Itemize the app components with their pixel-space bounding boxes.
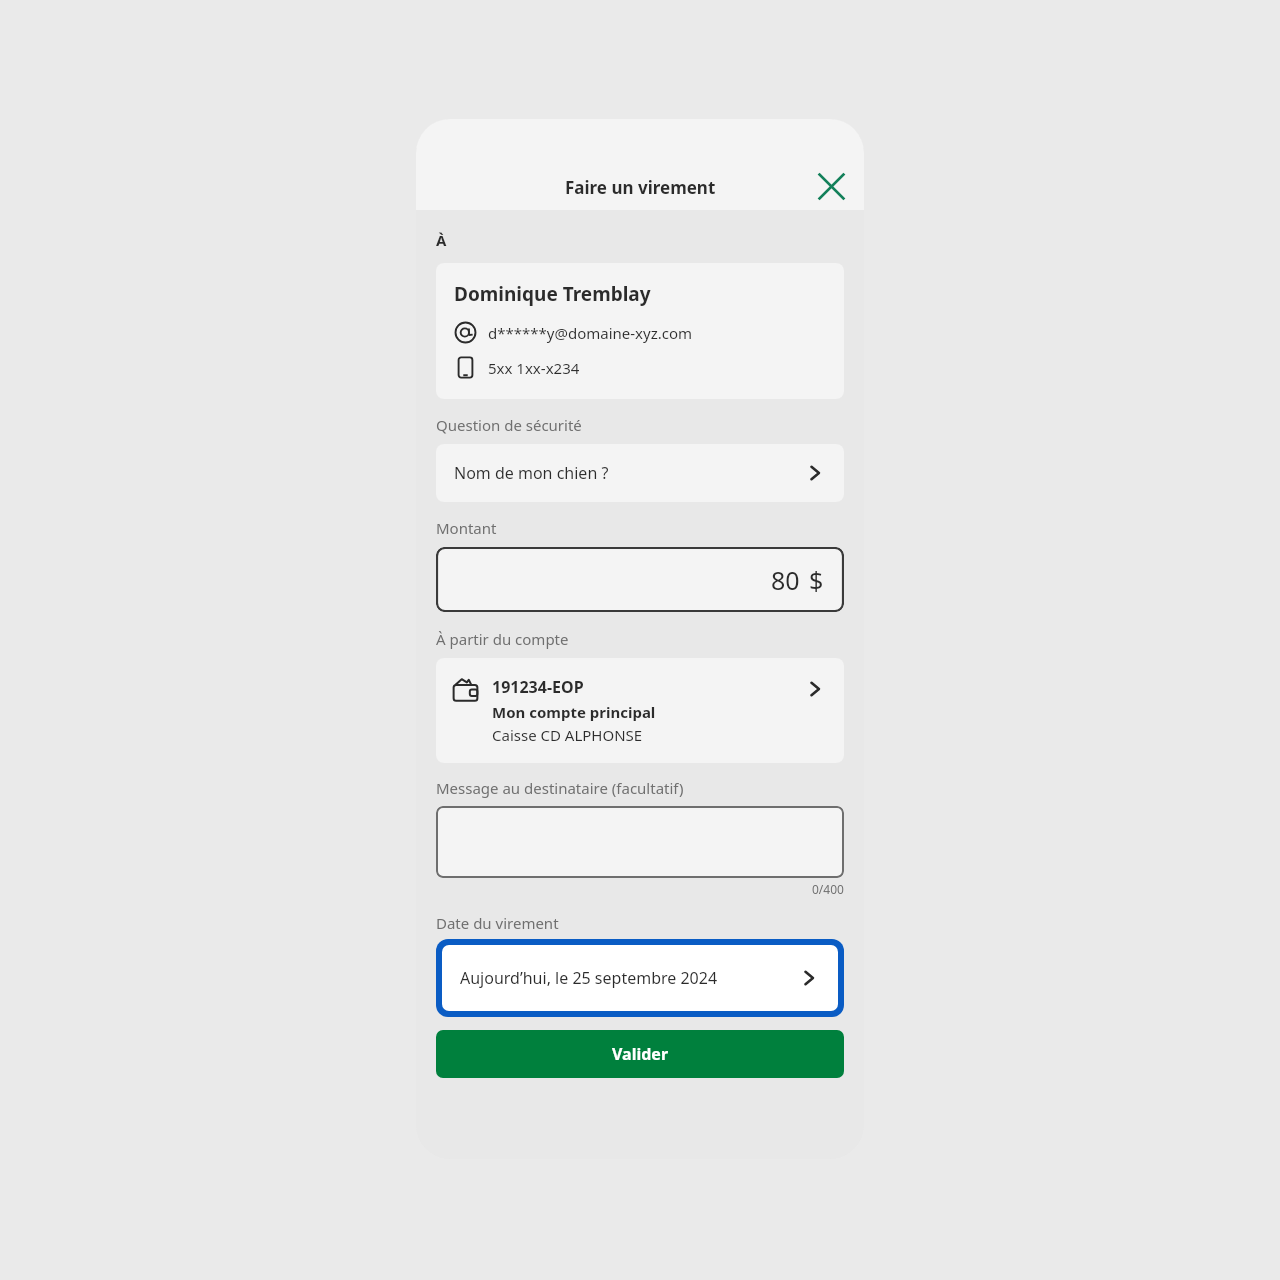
staticText: Montant xyxy=(436,518,497,538)
button[interactable]: Dominique Tremblay xyxy=(436,263,844,399)
staticText: 80 xyxy=(771,563,800,597)
staticText: À xyxy=(436,230,447,250)
button[interactable] xyxy=(436,806,844,878)
button[interactable]: Valider xyxy=(436,1030,844,1078)
button[interactable]: Fermer xyxy=(809,164,853,208)
staticText: $ xyxy=(809,563,824,597)
button[interactable]: 191234-EOP xyxy=(436,658,844,763)
staticText: Question de sécurité xyxy=(436,415,582,435)
staticText: 191234-EOP xyxy=(492,676,584,698)
staticText: Nom de mon chien ? xyxy=(454,462,804,484)
staticText: Caisse CD ALPHONSE xyxy=(492,725,643,745)
staticText: À partir du compte xyxy=(436,629,569,649)
staticText: Dominique Tremblay xyxy=(454,281,651,307)
button[interactable]: Aujourd’hui, le 25 septembre 2024 xyxy=(436,939,844,1017)
staticText: Message au destinataire (facultatif) xyxy=(436,778,684,798)
staticText: d******y@domaine-xyz.com xyxy=(488,323,693,343)
staticText: Mon compte principal xyxy=(492,702,656,722)
button[interactable]: 80 xyxy=(436,547,844,612)
staticText: 5xx 1xx-x234 xyxy=(488,358,580,378)
button[interactable]: Nom de mon chien ? xyxy=(436,444,844,502)
staticText: 0/400 xyxy=(812,881,844,897)
staticText: Faire un virement xyxy=(565,176,716,199)
staticText: Aujourd’hui, le 25 septembre 2024 xyxy=(460,967,798,989)
staticText: Date du virement xyxy=(436,913,559,933)
staticText: Valider xyxy=(612,1043,669,1065)
